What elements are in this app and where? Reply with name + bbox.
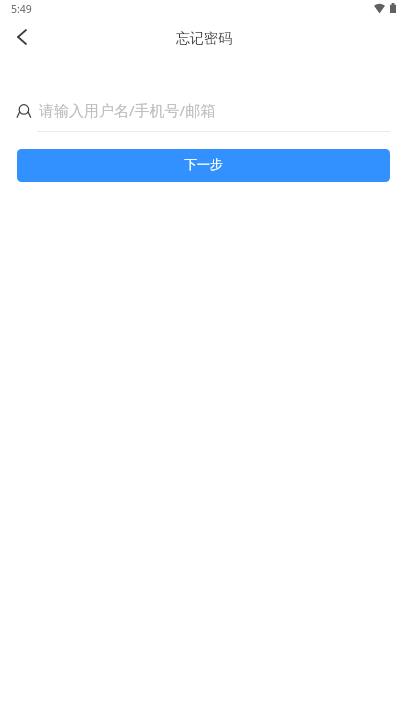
button[interactable]: 下一步 [17,149,390,182]
button[interactable]: Back [0,18,44,56]
staticText: 忘记密码 [176,30,232,48]
button[interactable]: 请输入用户名/手机号/邮箱 [0,96,407,136]
staticText: 下一步 [184,156,223,172]
staticText: 5:49 [11,2,32,16]
staticText: 请输入用户名/手机号/邮箱 [39,100,216,120]
